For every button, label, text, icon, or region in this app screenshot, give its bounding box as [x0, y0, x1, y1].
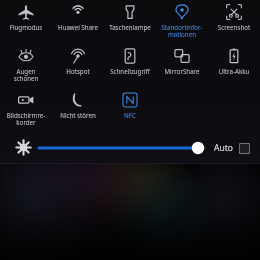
button[interactable]: Screenshot: [208, 0, 260, 44]
button[interactable]: Standortinfor- mationen: [156, 0, 208, 44]
button[interactable]: Hotspot: [52, 44, 104, 88]
staticText: Standortinfor- mationen: [156, 23, 208, 39]
button[interactable]: Bildschirmre- korder: [0, 88, 52, 132]
staticText: Screenshot: [208, 23, 260, 31]
button[interactable]: Huawei Share: [52, 0, 104, 44]
button[interactable]: Auto: [214, 142, 250, 154]
staticText: Flugmodus: [0, 23, 52, 31]
staticText: Huawei Share: [52, 23, 104, 31]
button[interactable]: Brightness slider: [39, 140, 205, 156]
button[interactable]: Taschenlampe: [104, 0, 156, 44]
staticText: Auto: [214, 142, 233, 154]
button[interactable]: Flugmodus: [0, 0, 52, 44]
staticText: Ultra-Akku: [208, 67, 260, 75]
button[interactable]: Augen schonen: [0, 44, 52, 88]
staticText: Taschenlampe: [104, 23, 156, 31]
button[interactable]: NFC: [104, 88, 156, 132]
staticText: Nicht stören: [52, 111, 104, 119]
button[interactable]: Ultra-Akku: [208, 44, 260, 88]
staticText: Bildschirmre- korder: [0, 111, 52, 127]
button[interactable]: MirrorShare: [156, 44, 208, 88]
staticText: Augen schonen: [0, 67, 52, 83]
staticText: NFC: [104, 111, 156, 119]
staticText: Hotspot: [52, 67, 104, 75]
other: Brightness: [16, 140, 31, 155]
staticText: MirrorShare: [156, 67, 208, 75]
button[interactable]: Schnellzugriff: [104, 44, 156, 88]
staticText: Schnellzugriff: [104, 67, 156, 75]
button[interactable]: Nicht stören: [52, 88, 104, 132]
